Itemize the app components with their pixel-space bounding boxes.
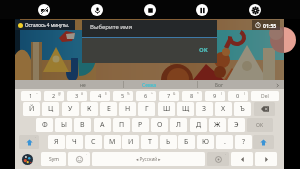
- button[interactable]: С: [85, 135, 102, 149]
- button[interactable]: Stop recording: [144, 4, 156, 16]
- button[interactable]: 6: [136, 91, 156, 101]
- button[interactable]: Б: [178, 135, 195, 149]
- button[interactable]: ·: [68, 152, 90, 166]
- staticText: Р: [138, 120, 143, 130]
- button[interactable]: А: [94, 118, 111, 132]
- button[interactable]: Щ: [177, 102, 194, 116]
- staticText: $: [105, 92, 107, 96]
- staticText: .: [224, 137, 226, 147]
- button[interactable]: Ь: [160, 135, 177, 149]
- staticText: Ь: [166, 137, 171, 147]
- button[interactable]: 2: [44, 91, 64, 101]
- button[interactable]: Осталось 4 минуты.: [18, 20, 70, 30]
- staticText: Ж: [214, 120, 221, 130]
- staticText: Й: [29, 104, 35, 114]
- button[interactable]: [15, 80, 284, 89]
- button[interactable]: Ж: [209, 118, 226, 132]
- button[interactable]: Ш: [158, 102, 175, 116]
- button[interactable]: 9: [205, 91, 225, 101]
- staticText: Бог: [215, 82, 224, 89]
- button[interactable]: В: [74, 118, 91, 132]
- button[interactable]: Pause: [196, 4, 208, 16]
- button[interactable]: OK: [247, 118, 273, 132]
- button[interactable]: К: [81, 102, 98, 116]
- button[interactable]: Д: [190, 118, 207, 132]
- button[interactable]: ?: [235, 135, 252, 149]
- staticText: Ф: [42, 120, 48, 130]
- button[interactable]: Й: [23, 102, 40, 116]
- button[interactable]: 0: [228, 91, 248, 101]
- staticText: О: [157, 120, 163, 130]
- staticText: 3: [75, 92, 79, 100]
- staticText: Ъ: [240, 104, 245, 114]
- button[interactable]: Ц: [42, 102, 59, 116]
- button[interactable]: Sym: [41, 152, 66, 166]
- button[interactable]: Ъ: [234, 102, 251, 116]
- button[interactable]: ·: [207, 152, 229, 166]
- button[interactable]: У: [62, 102, 79, 116]
- button[interactable]: ·: [19, 135, 39, 149]
- button[interactable]: Э: [228, 118, 245, 132]
- button[interactable]: [275, 83, 280, 88]
- staticText: 5: [121, 92, 125, 100]
- staticText: #: [81, 92, 84, 96]
- staticText: Севка: [142, 82, 157, 89]
- staticText: %: [127, 92, 130, 96]
- staticText: 7: [167, 92, 171, 100]
- staticText: М: [109, 137, 116, 147]
- button[interactable]: Settings: [249, 4, 261, 16]
- button[interactable]: .: [216, 135, 233, 149]
- button[interactable]: [255, 152, 277, 166]
- staticText: &: [173, 92, 176, 96]
- button[interactable]: О: [151, 118, 168, 132]
- staticText: И: [128, 137, 134, 147]
- button[interactable]: [254, 102, 275, 116]
- button[interactable]: OK: [192, 44, 214, 56]
- staticText: не: [80, 82, 86, 89]
- button[interactable]: Camera off: [38, 4, 50, 16]
- staticText: Д: [196, 120, 202, 130]
- staticText: Ш: [163, 104, 171, 114]
- button[interactable]: Н: [119, 102, 136, 116]
- button[interactable]: Ф: [36, 118, 53, 132]
- button[interactable]: Я: [48, 135, 65, 149]
- staticText: Ч: [72, 137, 77, 147]
- button[interactable]: [231, 152, 253, 166]
- button[interactable]: 4: [90, 91, 110, 101]
- button[interactable]: 1: [21, 91, 41, 101]
- staticText: *: [197, 92, 199, 96]
- button[interactable]: [253, 135, 274, 149]
- button[interactable]: 8: [182, 91, 202, 101]
- button[interactable]: Ы: [55, 118, 72, 132]
- button[interactable]: [15, 152, 39, 166]
- button[interactable]: 5: [113, 91, 133, 101]
- button[interactable]: Ч: [66, 135, 83, 149]
- button[interactable]: Р: [132, 118, 149, 132]
- button[interactable]: Г: [138, 102, 155, 116]
- staticText: Del: [261, 93, 269, 100]
- staticText: В: [80, 120, 85, 130]
- staticText: Л: [176, 120, 181, 130]
- button[interactable]: 01:55: [255, 20, 277, 30]
- staticText: ·: [225, 153, 226, 157]
- button[interactable]: Del: [251, 91, 279, 101]
- button[interactable]: 3: [67, 91, 87, 101]
- staticText: П: [119, 120, 125, 130]
- button[interactable]: З: [196, 102, 213, 116]
- staticText: С: [91, 137, 96, 147]
- button[interactable]: Microphone: [91, 4, 103, 16]
- button[interactable]: Ю: [197, 135, 214, 149]
- button[interactable]: Х: [215, 102, 232, 116]
- button[interactable]: М: [104, 135, 121, 149]
- button[interactable]: Л: [170, 118, 187, 132]
- button[interactable]: Т: [141, 135, 158, 149]
- staticText: OK: [199, 46, 208, 54]
- button[interactable]: ◂ Русский ▸: [92, 152, 205, 166]
- button[interactable]: И: [122, 135, 139, 149]
- button[interactable]: 7: [159, 91, 179, 101]
- button[interactable]: Е: [100, 102, 117, 116]
- staticText: @: [58, 92, 61, 96]
- staticText: Sym: [49, 156, 59, 163]
- button[interactable]: П: [113, 118, 130, 132]
- staticText: (: [221, 92, 222, 96]
